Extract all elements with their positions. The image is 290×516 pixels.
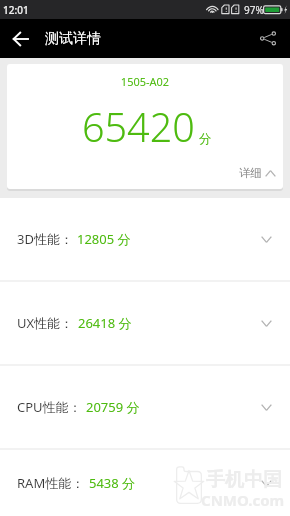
button[interactable]: Back	[0, 19, 41, 58]
staticText: 12:01	[3, 3, 29, 17]
button[interactable]: 详细	[227, 162, 283, 189]
button[interactable]: CPU性能：	[0, 366, 290, 448]
staticText: 分	[199, 131, 212, 147]
staticText: 5438 分	[89, 474, 136, 492]
staticText: 26418 分	[78, 314, 132, 332]
staticText: 详细	[239, 166, 262, 180]
button[interactable]: Share	[246, 19, 290, 58]
staticText: 20759 分	[86, 398, 140, 416]
button[interactable]: 1505-A02	[7, 64, 283, 189]
staticText: 1505-A02	[7, 74, 283, 89]
staticText: CNMO.com	[201, 490, 285, 510]
staticText: 97%	[244, 3, 264, 17]
staticText: 65420	[82, 100, 195, 154]
staticText: 3D性能：	[17, 230, 73, 248]
staticText: CPU性能：	[17, 398, 82, 416]
button[interactable]: 3D性能：	[0, 198, 290, 280]
button[interactable]: RAM性能：	[0, 450, 290, 516]
staticText: RAM性能：	[17, 474, 85, 492]
staticText: 12805 分	[77, 230, 131, 248]
staticText: 测试详情	[45, 30, 101, 48]
staticText: UX性能：	[17, 314, 74, 332]
staticText: 手机中国	[206, 468, 282, 492]
button[interactable]: UX性能：	[0, 282, 290, 364]
